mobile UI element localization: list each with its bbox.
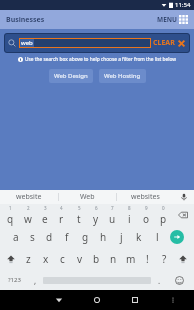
- staticText: 3: [44, 205, 47, 211]
- button[interactable]: Home: [78, 290, 116, 310]
- button[interactable]: c: [54, 248, 71, 270]
- staticText: k: [136, 230, 142, 244]
- other: Clear: [177, 39, 186, 48]
- button[interactable]: Voice input: [174, 190, 194, 204]
- staticText: p: [160, 212, 167, 226]
- button[interactable]: h: [94, 226, 112, 248]
- staticText: r: [59, 212, 64, 226]
- staticText: x: [43, 252, 49, 266]
- staticText: v: [77, 252, 83, 266]
- button[interactable]: Web Design: [49, 69, 93, 83]
- staticText: d: [46, 230, 53, 244]
- button[interactable]: Shift: [1, 248, 20, 270]
- button[interactable]: 3: [36, 204, 53, 226]
- staticText: websites: [131, 192, 160, 202]
- staticText: a: [13, 230, 19, 244]
- staticText: 0: [162, 205, 165, 211]
- staticText: w: [24, 212, 32, 226]
- staticText: MENU: [157, 15, 177, 24]
- button[interactable]: z: [20, 248, 37, 270]
- button[interactable]: Backspace: [172, 204, 193, 226]
- button[interactable]: websites: [117, 190, 174, 204]
- button[interactable]: k: [130, 226, 148, 248]
- button[interactable]: Web Hosting: [99, 69, 146, 83]
- staticText: z: [26, 252, 31, 266]
- staticText: f: [65, 230, 69, 244]
- button[interactable]: Back: [40, 290, 78, 310]
- button[interactable]: !: [139, 248, 156, 270]
- button[interactable]: a: [7, 226, 24, 248]
- staticText: 5: [78, 205, 81, 211]
- staticText: n: [110, 252, 117, 266]
- button[interactable]: l: [148, 226, 166, 248]
- button[interactable]: 4: [53, 204, 70, 226]
- button[interactable]: m: [122, 248, 139, 270]
- button[interactable]: d: [41, 226, 58, 248]
- staticText: g: [82, 230, 89, 244]
- staticText: website: [16, 192, 42, 202]
- staticText: q: [7, 212, 14, 226]
- button[interactable]: Shift: [173, 248, 193, 270]
- button[interactable]: 9: [138, 204, 155, 226]
- button[interactable]: website: [0, 190, 58, 204]
- button[interactable]: ?: [156, 248, 173, 270]
- staticText: 4: [60, 205, 63, 211]
- button[interactable]: 5: [70, 204, 87, 226]
- button[interactable]: s: [24, 226, 41, 248]
- button[interactable]: 7: [104, 204, 121, 226]
- button[interactable]: 0: [155, 204, 172, 226]
- button[interactable]: v: [71, 248, 88, 270]
- staticText: m: [126, 252, 136, 266]
- button[interactable]: 6: [87, 204, 104, 226]
- staticText: Web Design: [54, 72, 88, 80]
- staticText: b: [93, 252, 100, 266]
- button[interactable]: x: [37, 248, 54, 270]
- button[interactable]: Enter: [166, 226, 187, 248]
- staticText: ?: [162, 252, 167, 266]
- button[interactable]: ?123: [2, 270, 27, 290]
- button[interactable]: CLEAR: [153, 38, 186, 48]
- staticText: Web Hosting: [104, 72, 141, 80]
- button[interactable]: n: [105, 248, 122, 270]
- staticText: !: [146, 252, 149, 266]
- other: Search: [8, 39, 16, 47]
- staticText: c: [60, 252, 65, 266]
- staticText: s: [30, 230, 35, 244]
- staticText: j: [120, 230, 123, 244]
- staticText: 7: [111, 205, 114, 211]
- staticText: y: [93, 212, 99, 226]
- staticText: ,: [34, 275, 37, 286]
- button[interactable]: j: [112, 226, 130, 248]
- staticText: .: [158, 275, 161, 286]
- staticText: t: [77, 212, 81, 226]
- staticText: 1: [9, 205, 12, 211]
- button[interactable]: 8: [121, 204, 138, 226]
- button[interactable]: 2: [19, 204, 36, 226]
- button[interactable]: b: [88, 248, 105, 270]
- button[interactable]: .: [151, 270, 167, 290]
- button[interactable]: MENU: [156, 13, 189, 26]
- button[interactable]: g: [76, 226, 94, 248]
- staticText: 11:54: [175, 1, 191, 9]
- staticText: h: [100, 230, 107, 244]
- button[interactable]: More options: [154, 290, 192, 310]
- staticText: o: [143, 212, 150, 226]
- button[interactable]: ,: [27, 270, 43, 290]
- button[interactable]: 1: [1, 204, 19, 226]
- staticText: i: [128, 212, 131, 226]
- button[interactable]: Emoji: [167, 270, 192, 290]
- button[interactable]: Recents: [116, 290, 154, 310]
- button[interactable]: Web: [59, 190, 116, 204]
- staticText: Use the search box above to help choose …: [25, 56, 176, 63]
- staticText: 2: [27, 205, 30, 211]
- staticText: Web: [80, 192, 95, 202]
- staticText: Businesses: [6, 15, 45, 25]
- staticText: 6: [95, 205, 98, 211]
- staticText: 8: [128, 205, 131, 211]
- button[interactable]: f: [58, 226, 76, 248]
- staticText: u: [109, 212, 116, 226]
- staticText: 9: [145, 205, 148, 211]
- staticText: web: [21, 39, 33, 47]
- staticText: e: [42, 212, 48, 226]
